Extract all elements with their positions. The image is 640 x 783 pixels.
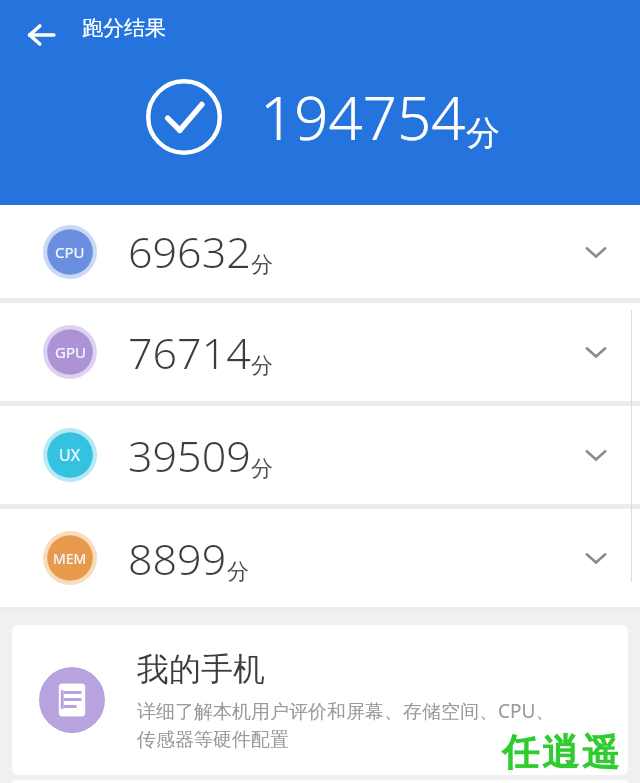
button[interactable]: UX bbox=[0, 406, 640, 504]
staticText: GPU bbox=[55, 342, 86, 362]
button[interactable]: Back bbox=[14, 8, 68, 62]
staticText: 分 bbox=[251, 251, 273, 279]
button[interactable]: GPU bbox=[0, 303, 640, 401]
staticText: UX bbox=[59, 444, 81, 466]
staticText: MEM bbox=[53, 549, 87, 568]
staticText: 任逍遥 bbox=[502, 729, 640, 776]
button[interactable]: MEM bbox=[0, 509, 640, 607]
staticText: CPU bbox=[55, 242, 85, 262]
staticText: 194754 bbox=[260, 76, 466, 158]
staticText: 69632 bbox=[128, 222, 251, 281]
staticText: 详细了解本机用户评价和屏幕、存储空间、CPU、 传感器等硬件配置 bbox=[137, 698, 555, 752]
staticText: 我的手机 bbox=[137, 649, 265, 689]
staticText: 39509 bbox=[128, 426, 251, 485]
button[interactable]: Expand GPU details bbox=[570, 326, 622, 378]
staticText: 跑分结果 bbox=[82, 15, 166, 41]
button[interactable]: Expand MEM details bbox=[570, 532, 622, 584]
staticText: 分 bbox=[251, 352, 273, 380]
staticText: 8899 bbox=[128, 529, 227, 588]
button[interactable]: Expand UX details bbox=[570, 429, 622, 481]
button[interactable]: Expand CPU details bbox=[570, 226, 622, 278]
button[interactable]: CPU bbox=[0, 205, 640, 298]
staticText: 分 bbox=[251, 455, 273, 483]
button[interactable]: 我的手机 bbox=[12, 625, 628, 775]
staticText: 分 bbox=[227, 558, 249, 586]
staticText: 分 bbox=[466, 112, 500, 155]
staticText: 76714 bbox=[128, 323, 251, 382]
